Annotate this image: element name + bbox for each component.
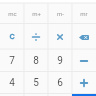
staticText: m+ xyxy=(32,10,41,17)
staticText: 8 xyxy=(33,55,39,67)
staticText: m- xyxy=(57,10,64,17)
button[interactable]: C xyxy=(0,24,24,50)
button[interactable]: Minus xyxy=(72,49,96,72)
button[interactable]: Plus xyxy=(72,72,96,94)
button[interactable]: 6 xyxy=(48,72,72,94)
button[interactable]: 4 xyxy=(0,72,24,94)
staticText: mc xyxy=(8,10,17,17)
button[interactable]: Backspace xyxy=(72,24,96,50)
staticText: C xyxy=(9,32,15,41)
staticText: 9 xyxy=(57,55,63,67)
button[interactable]: 8 xyxy=(24,49,48,72)
button[interactable]: 9 xyxy=(48,49,72,72)
button[interactable]: m- xyxy=(48,3,72,24)
button[interactable]: m+ xyxy=(24,3,48,24)
staticText: 7 xyxy=(9,55,15,67)
button[interactable]: 7 xyxy=(0,49,24,72)
button[interactable]: mr xyxy=(72,3,96,24)
button[interactable]: mc xyxy=(0,3,24,24)
button[interactable]: Divide xyxy=(24,24,48,50)
staticText: mr xyxy=(80,10,88,17)
staticText: 6 xyxy=(57,77,63,89)
staticText: 5 xyxy=(33,77,39,89)
staticText: 4 xyxy=(9,77,15,89)
button[interactable]: 5 xyxy=(24,72,48,94)
button[interactable]: Multiply xyxy=(48,24,72,50)
